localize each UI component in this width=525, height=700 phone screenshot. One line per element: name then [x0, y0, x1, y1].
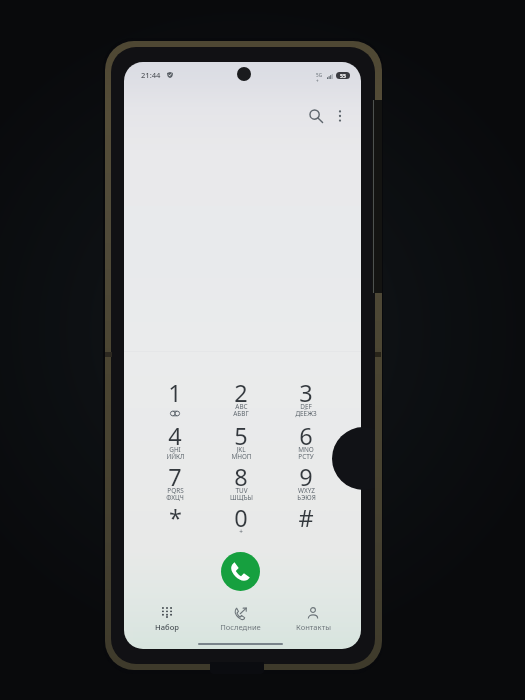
staticText: 2: [234, 377, 248, 409]
staticText: +: [239, 527, 243, 536]
staticText: РСТУ: [298, 452, 314, 461]
button[interactable]: [145, 422, 205, 462]
button[interactable]: [276, 504, 336, 544]
button[interactable]: [211, 504, 271, 544]
staticText: JKL: [236, 445, 246, 454]
staticText: МНОП: [231, 452, 252, 461]
button[interactable]: [145, 379, 205, 419]
staticText: ДЕЁЖЗ: [295, 409, 317, 418]
button[interactable]: [276, 463, 336, 503]
button[interactable]: [276, 422, 336, 462]
button[interactable]: [131, 600, 203, 636]
staticText: 3: [299, 377, 313, 409]
staticText: 6: [299, 420, 313, 452]
staticText: 8: [234, 461, 248, 493]
staticText: PQRS: [167, 486, 184, 495]
staticText: Набор: [155, 622, 179, 632]
button[interactable]: [277, 600, 349, 636]
staticText: 5G: [316, 72, 322, 78]
staticText: ИЙКЛ: [166, 452, 185, 461]
staticText: GHI: [169, 445, 181, 454]
staticText: 55: [340, 72, 346, 79]
staticText: DEF: [300, 402, 312, 411]
button[interactable]: Search: [303, 103, 329, 129]
staticText: +: [316, 78, 319, 84]
staticText: Последние: [220, 622, 261, 632]
staticText: 5: [234, 420, 248, 452]
staticText: 9: [299, 461, 313, 493]
staticText: WXYZ: [298, 486, 315, 495]
staticText: 21:44: [141, 70, 161, 80]
staticText: #: [298, 502, 314, 534]
staticText: ЬЭЮЯ: [297, 493, 316, 502]
staticText: *: [169, 502, 182, 534]
button[interactable]: [145, 463, 205, 503]
staticText: 4: [168, 420, 182, 452]
button[interactable]: [276, 379, 336, 419]
button[interactable]: More options: [327, 103, 353, 129]
staticText: ABC: [235, 402, 248, 411]
button[interactable]: [204, 600, 276, 636]
button[interactable]: [211, 463, 271, 503]
staticText: ШЩЪЫ: [230, 493, 253, 502]
staticText: 1: [168, 377, 182, 409]
button[interactable]: Call: [221, 552, 260, 591]
button[interactable]: [211, 422, 271, 462]
staticText: АБВГ: [233, 409, 249, 418]
button[interactable]: [211, 379, 271, 419]
button[interactable]: [145, 504, 205, 544]
staticText: MNO: [298, 445, 314, 454]
staticText: TUV: [235, 486, 248, 495]
staticText: 7: [168, 461, 182, 493]
staticText: ФХЦЧ: [166, 493, 184, 502]
staticText: 0: [234, 502, 248, 534]
staticText: Контакты: [296, 622, 331, 632]
